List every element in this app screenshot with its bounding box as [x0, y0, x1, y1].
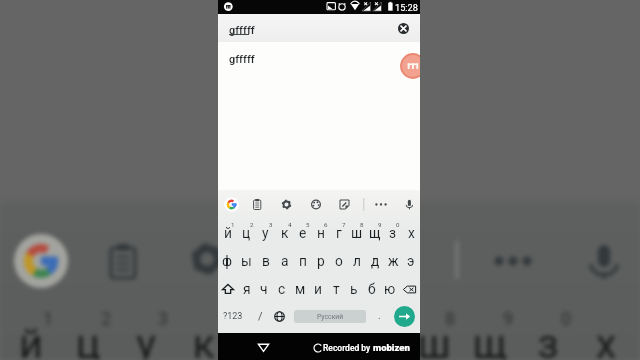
button[interactable]: а: [275, 247, 294, 275]
button[interactable]: т: [327, 275, 345, 303]
button[interactable]: Clear query: [398, 23, 409, 34]
staticText: х: [588, 319, 624, 360]
button[interactable]: gfffff: [218, 41, 420, 72]
staticText: й: [13, 319, 49, 360]
staticText: б: [368, 281, 376, 297]
button[interactable]: ф: [218, 247, 237, 275]
staticText: у: [128, 319, 164, 360]
staticText: в: [262, 253, 270, 269]
staticText: 0: [558, 308, 574, 329]
staticText: gfffff: [229, 53, 255, 66]
button[interactable]: gfffff: [218, 14, 420, 42]
staticText: г: [336, 225, 342, 241]
staticText: 4: [288, 221, 292, 228]
button[interactable]: Change language: [271, 308, 287, 324]
button[interactable]: д: [366, 247, 384, 275]
button[interactable]: .: [371, 308, 387, 324]
staticText: з: [530, 319, 566, 360]
staticText: 2: [98, 308, 114, 329]
staticText: 3: [269, 221, 273, 228]
button[interactable]: г: [330, 218, 348, 246]
staticText: ц: [242, 225, 251, 241]
button[interactable]: /: [252, 308, 268, 324]
button[interactable]: [218, 190, 420, 219]
staticText: н: [317, 225, 325, 241]
button[interactable]: Mobizen recorder: [401, 54, 420, 78]
button[interactable]: ?123: [222, 302, 244, 330]
staticText: к: [186, 319, 222, 360]
staticText: ь: [350, 281, 358, 297]
button[interactable]: м: [291, 275, 309, 303]
button[interactable]: э: [402, 247, 420, 275]
button[interactable]: н: [312, 218, 330, 246]
staticText: /: [258, 310, 263, 323]
button[interactable]: р: [312, 247, 330, 275]
staticText: ж: [388, 253, 399, 269]
staticText: а: [281, 253, 289, 269]
staticText: ф: [222, 253, 233, 269]
staticText: ч: [260, 281, 268, 297]
staticText: у: [262, 225, 269, 241]
staticText: 8: [360, 221, 364, 228]
staticText: ц: [70, 319, 106, 360]
button[interactable]: б: [363, 275, 381, 303]
button[interactable]: с: [273, 275, 291, 303]
staticText: р: [317, 253, 325, 269]
staticText: gfffff: [229, 24, 255, 37]
button[interactable]: ц: [237, 218, 256, 246]
button[interactable]: к: [275, 218, 294, 246]
staticText: ?123: [223, 311, 243, 322]
staticText: с: [278, 281, 286, 297]
staticText: щ: [369, 225, 381, 241]
button[interactable]: щ: [366, 218, 384, 246]
staticText: 3: [155, 308, 171, 329]
staticText: Recorded by: [323, 343, 373, 353]
staticText: д: [371, 253, 380, 269]
staticText: ю: [384, 281, 396, 297]
button[interactable]: ы: [237, 247, 256, 275]
button[interactable]: ю: [381, 275, 399, 303]
staticText: 8: [442, 308, 458, 329]
staticText: 5: [306, 221, 310, 228]
button[interactable]: Enter: [394, 306, 415, 327]
staticText: 9: [500, 308, 516, 329]
button[interactable]: з: [384, 218, 402, 246]
staticText: 1: [40, 308, 56, 329]
staticText: 7: [342, 221, 346, 228]
button[interactable]: о: [330, 247, 348, 275]
button[interactable]: ь: [345, 275, 363, 303]
staticText: и: [314, 281, 322, 297]
button[interactable]: ч: [255, 275, 273, 303]
button[interactable]: х: [402, 218, 420, 246]
staticText: 9: [378, 221, 382, 228]
staticText: ш: [416, 319, 452, 360]
button[interactable]: п: [294, 247, 312, 275]
staticText: п: [299, 253, 307, 269]
staticText: .: [378, 310, 381, 322]
staticText: м: [295, 281, 306, 297]
button[interactable]: е: [294, 218, 312, 246]
button[interactable]: и: [309, 275, 327, 303]
button[interactable]: ж: [384, 247, 402, 275]
staticText: 1: [231, 221, 235, 228]
staticText: 0: [396, 221, 400, 228]
button[interactable]: у: [256, 218, 275, 246]
staticText: з: [389, 225, 397, 241]
button[interactable]: Backspace: [399, 275, 420, 303]
button[interactable]: й: [218, 218, 237, 246]
button[interactable]: ш: [348, 218, 366, 246]
staticText: 15:28: [395, 2, 418, 13]
staticText: е: [299, 225, 307, 241]
button[interactable]: в: [256, 247, 275, 275]
staticText: л: [353, 253, 361, 269]
staticText: о: [335, 253, 343, 269]
staticText: mobizen: [373, 342, 410, 353]
button[interactable]: я: [238, 275, 255, 303]
button[interactable]: Shift: [218, 275, 238, 303]
staticText: Русский: [317, 313, 344, 321]
button[interactable]: л: [348, 247, 366, 275]
staticText: х: [408, 225, 415, 241]
button[interactable]: Hide keyboard: [255, 339, 271, 355]
staticText: ы: [241, 253, 252, 269]
button[interactable]: Русский: [294, 310, 366, 323]
